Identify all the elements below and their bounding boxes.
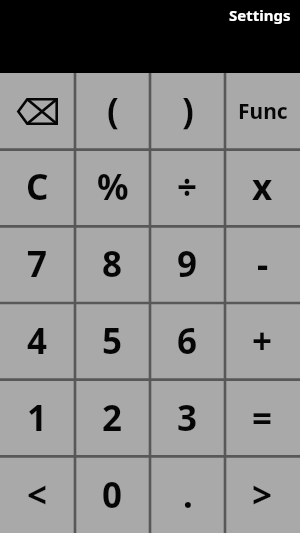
button[interactable]: Func [225, 73, 300, 149]
staticText: 7 [27, 240, 48, 288]
button[interactable]: 7 [0, 225, 75, 302]
staticText: 5 [102, 317, 123, 365]
button[interactable]: - [225, 225, 300, 302]
button[interactable]: % [75, 149, 150, 225]
button[interactable]: . [150, 456, 225, 533]
staticText: C [26, 163, 49, 211]
staticText: . [183, 471, 193, 519]
staticText: % [97, 163, 129, 211]
staticText: 8 [102, 240, 123, 288]
staticText: + [252, 317, 273, 365]
staticText: > [252, 471, 273, 519]
button[interactable]: 0 [75, 456, 150, 533]
staticText: 1 [27, 394, 48, 442]
staticText: < [27, 471, 48, 519]
button[interactable]: x [225, 149, 300, 225]
staticText: = [252, 394, 273, 442]
staticText: ( [107, 87, 119, 135]
staticText: 9 [177, 240, 198, 288]
button[interactable]: = [225, 379, 300, 456]
button[interactable]: 5 [75, 302, 150, 379]
staticText: ÷ [177, 163, 198, 211]
button[interactable]: ( [75, 73, 150, 149]
button[interactable]: Settings [229, 0, 300, 25]
button[interactable]: 2 [75, 379, 150, 456]
staticText: 6 [177, 317, 198, 365]
button[interactable]: 8 [75, 225, 150, 302]
button[interactable]: 4 [0, 302, 75, 379]
button[interactable]: 6 [150, 302, 225, 379]
button[interactable]: > [225, 456, 300, 533]
staticText: ) [182, 87, 194, 135]
staticText: 3 [177, 394, 198, 442]
button[interactable]: 1 [0, 379, 75, 456]
button[interactable]: ) [150, 73, 225, 149]
button[interactable]: C [0, 149, 75, 225]
staticText: - [257, 240, 269, 288]
button[interactable]: ÷ [150, 149, 225, 225]
staticText: 2 [102, 394, 123, 442]
button[interactable]: 9 [150, 225, 225, 302]
staticText: Settings [229, 5, 291, 25]
staticText: x [252, 163, 273, 211]
button[interactable] [0, 73, 75, 149]
button[interactable]: < [0, 456, 75, 533]
staticText: 4 [27, 317, 48, 365]
button[interactable]: 3 [150, 379, 225, 456]
staticText: 0 [102, 471, 123, 519]
staticText: Func [238, 97, 288, 126]
button[interactable]: + [225, 302, 300, 379]
